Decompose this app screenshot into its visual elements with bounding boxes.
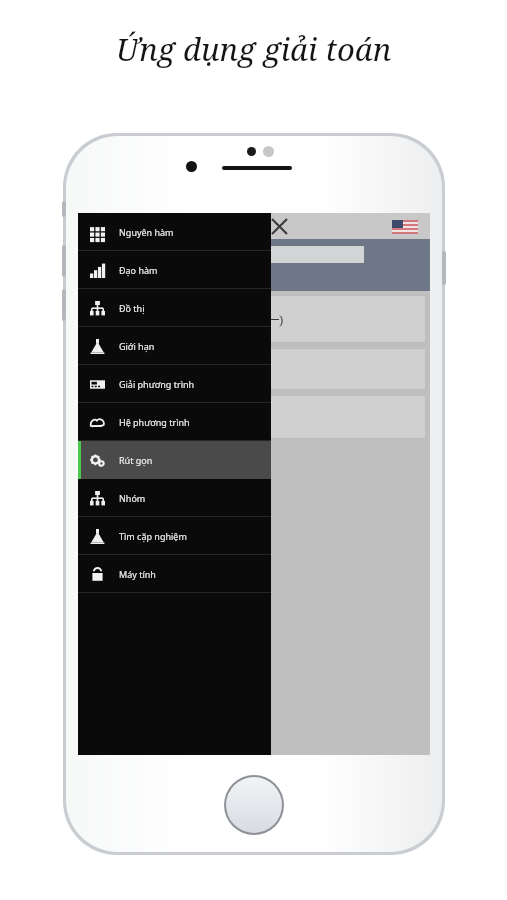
staticText: Giải phương trình (119, 378, 195, 390)
button[interactable]: Nhóm (78, 479, 271, 517)
button[interactable]: )) (82, 395, 426, 439)
staticText: Nguyên hàm (119, 226, 174, 238)
button[interactable] (84, 246, 364, 263)
button[interactable]: Hệ phương trình (78, 403, 271, 441)
button[interactable]: x − 4 (82, 295, 426, 343)
button[interactable]: Tìm cặp nghiệm (78, 517, 271, 555)
button[interactable]: Language (392, 220, 418, 234)
staticText: Rút gọn (119, 454, 153, 466)
staticText: (x + 3) (238, 321, 267, 335)
staticText: Giới hạn (119, 340, 155, 352)
button[interactable]: Close (268, 215, 290, 237)
staticText: Nhóm (119, 492, 146, 504)
button[interactable] (82, 348, 426, 390)
staticText: Đồ thị (119, 302, 145, 314)
staticText: ) (279, 311, 284, 329)
staticText: )) (92, 409, 101, 425)
staticText: Hệ phương trình (119, 416, 190, 428)
button[interactable]: Giải phương trình (78, 365, 271, 403)
button[interactable]: Rút gọn (78, 441, 271, 479)
button[interactable]: Nguyên hàm (78, 213, 271, 251)
staticText: Ứng dụng giải toán (116, 28, 392, 70)
button[interactable]: Đồ thị (78, 289, 271, 327)
staticText: Đạo hàm (119, 264, 158, 276)
staticText: Máy tính (119, 568, 156, 580)
button[interactable]: Máy tính (78, 555, 271, 593)
button[interactable]: Solve (84, 270, 158, 287)
staticText: Tìm cặp nghiệm (119, 530, 187, 542)
button[interactable]: Đạo hàm (78, 251, 271, 289)
button[interactable]: Giới hạn (78, 327, 271, 365)
